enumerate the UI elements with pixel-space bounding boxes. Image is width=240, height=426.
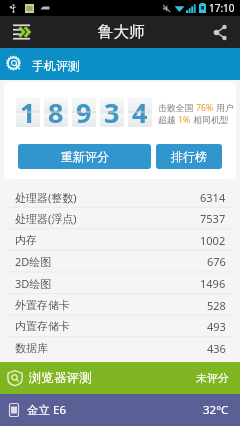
staticText: 3D绘图 (15, 276, 52, 291)
staticText: 6314 (200, 190, 226, 205)
button[interactable]: 排行榜 (156, 144, 222, 169)
button[interactable]: Menu (0, 16, 40, 48)
staticText: 1002 (200, 233, 226, 248)
button[interactable]: 外置存储卡 (0, 294, 240, 316)
button[interactable]: 重新评分 (18, 144, 151, 169)
staticText: 528 (207, 298, 226, 313)
button[interactable]: 手机评测 (0, 48, 240, 80)
staticText: 金立 E6 (27, 402, 66, 418)
staticText: 外置存储卡 (15, 298, 70, 312)
staticText: 鲁大师 (98, 22, 145, 42)
staticText: 1% (178, 114, 191, 126)
button[interactable]: 内存 (0, 229, 240, 251)
staticText: 击败全国 (158, 102, 196, 114)
staticText: 2D绘图 (15, 254, 52, 269)
staticText: 未评分 (196, 371, 229, 385)
staticText: 17:10 (209, 1, 235, 15)
staticText: 9 (76, 97, 92, 124)
staticText: 3 (104, 97, 120, 124)
button[interactable]: 3D绘图 (0, 272, 240, 294)
staticText: 1496 (200, 276, 226, 291)
staticText: 1 (20, 97, 36, 124)
button[interactable]: 浏览器评测 (0, 362, 240, 394)
staticText: 436 (207, 341, 226, 356)
staticText: 浏览器评测 (29, 370, 92, 386)
staticText: 76% (196, 102, 214, 114)
button[interactable]: 处理器(浮点) (0, 207, 240, 229)
staticText: 相同机型 (191, 114, 229, 126)
staticText: 32°C (203, 402, 229, 418)
staticText: 排行榜 (171, 149, 207, 164)
staticText: 手机评测 (32, 58, 80, 73)
staticText: 处理器(整数) (15, 190, 77, 205)
staticText: 4 (132, 97, 148, 124)
button[interactable]: 内置存储卡 (0, 315, 240, 337)
button[interactable]: 金立 E6 (0, 394, 240, 426)
staticText: 493 (207, 319, 226, 334)
staticText: 676 (207, 254, 226, 269)
button[interactable]: 数据库 (0, 337, 240, 359)
staticText: 8 (48, 97, 64, 124)
button[interactable]: 处理器(整数) (0, 186, 240, 208)
staticText: 超越 (158, 114, 178, 126)
button[interactable]: Share (202, 16, 240, 48)
button[interactable]: 2D绘图 (0, 250, 240, 272)
staticText: 内置存储卡 (15, 319, 70, 333)
staticText: 重新评分 (61, 149, 109, 164)
staticText: 处理器(浮点) (15, 211, 77, 226)
staticText: 内存 (15, 233, 37, 247)
staticText: 用户 (214, 102, 234, 114)
staticText: 数据库 (15, 341, 48, 355)
staticText: 7537 (200, 211, 226, 226)
